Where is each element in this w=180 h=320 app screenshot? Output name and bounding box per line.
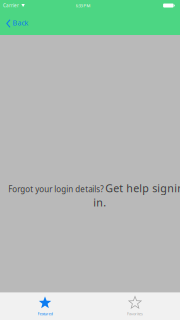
staticText: Favorites bbox=[127, 311, 143, 316]
staticText: Forgot your login details? Get help sign… bbox=[8, 181, 180, 209]
staticText: Featured bbox=[37, 311, 52, 316]
button[interactable]: Featured bbox=[0, 292, 90, 320]
staticText: Carrier bbox=[3, 2, 19, 8]
staticText: 6:33 PM bbox=[75, 3, 90, 8]
button[interactable]: Back bbox=[0, 13, 44, 34]
staticText: Back bbox=[13, 18, 29, 27]
button[interactable]: Favorites bbox=[90, 292, 180, 320]
